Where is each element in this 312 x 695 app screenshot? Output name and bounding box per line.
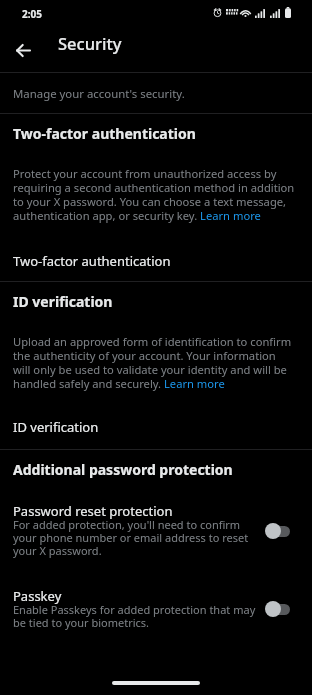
button[interactable]: ID verification — [0, 412, 312, 442]
staticText: Password reset protection — [13, 502, 173, 520]
staticText: Manage your account's security. — [13, 86, 185, 102]
staticText: Two-factor authentication — [13, 124, 196, 143]
staticText: Protect your account from unauthorized a… — [13, 166, 296, 224]
button[interactable]: Passkey — [0, 579, 312, 641]
staticText: For added protection, you'll need to con… — [13, 517, 261, 559]
staticText: Passkey — [13, 587, 62, 605]
staticText: ID verification — [13, 292, 113, 311]
staticText: Security — [58, 32, 122, 54]
button[interactable]: Password reset protection — [0, 494, 312, 563]
staticText: Enable Passkeys for added protection tha… — [13, 602, 261, 631]
staticText: ID verification — [13, 418, 99, 436]
staticText: 2:05 — [22, 7, 42, 21]
staticText: Upload an approved form of identificatio… — [13, 334, 296, 392]
button[interactable]: Back — [6, 34, 39, 67]
staticText: Two-factor authentication — [13, 252, 171, 270]
staticText: Additional password protection — [13, 460, 233, 479]
button[interactable]: Two-factor authentication — [0, 246, 312, 276]
